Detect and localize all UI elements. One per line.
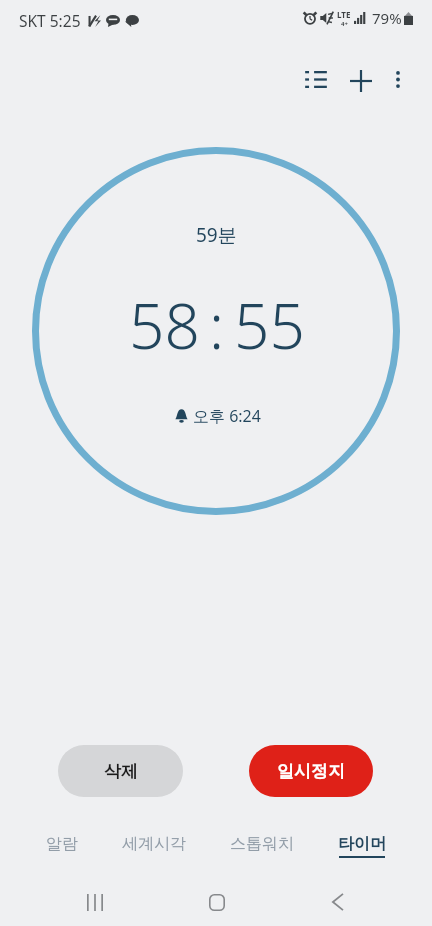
button[interactable]: More options xyxy=(377,58,419,100)
button[interactable]: 타이머 xyxy=(338,834,386,870)
button[interactable]: Home xyxy=(156,878,277,926)
staticText: 알람 xyxy=(46,834,78,854)
staticText: 삭제 xyxy=(104,761,138,782)
staticText: 59분 xyxy=(196,222,237,248)
button[interactable]: 세계시각 xyxy=(122,834,186,870)
button[interactable]: Preset timers xyxy=(293,56,339,102)
button[interactable]: 삭제 xyxy=(58,745,183,797)
staticText: 55 xyxy=(234,283,305,367)
staticText: 세계시각 xyxy=(122,834,186,854)
button[interactable]: 일시정지 xyxy=(249,745,373,797)
button[interactable]: Back xyxy=(277,878,398,926)
staticText: : xyxy=(209,283,225,367)
staticText: LTE xyxy=(337,9,351,20)
staticText: 79% xyxy=(372,8,402,28)
staticText: 스톱워치 xyxy=(230,834,294,854)
button[interactable]: Add timer xyxy=(338,58,383,103)
button[interactable]: 알람 xyxy=(46,834,78,870)
staticText: SKT 5:25 xyxy=(19,10,81,31)
staticText: 58 xyxy=(129,283,200,367)
staticText: 4+ xyxy=(341,20,348,28)
staticText: 일시정지 xyxy=(277,761,345,782)
button[interactable]: Recents xyxy=(34,878,156,926)
button[interactable]: 스톱워치 xyxy=(230,834,294,870)
staticText: 오후 6:24 xyxy=(193,405,261,427)
staticText: 타이머 xyxy=(338,834,386,854)
